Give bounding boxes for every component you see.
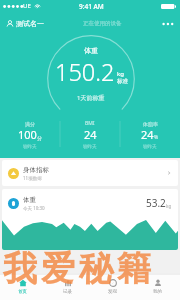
button[interactable]: 发现 (90, 274, 135, 300)
staticText: 今天 10:30 (23, 205, 45, 211)
staticText: kg (166, 203, 172, 209)
staticText: 发现 (108, 289, 117, 295)
button[interactable]: 身体指标 (2, 160, 178, 186)
staticText: 正在使用的设备 (83, 20, 122, 27)
staticText: 24 (84, 127, 97, 142)
staticText: 我的 (153, 289, 162, 295)
button[interactable]: 体重 (2, 189, 178, 217)
staticText: 较昨天 (143, 144, 157, 150)
staticText: BMI (85, 120, 95, 127)
staticText: 11项数据 (23, 175, 42, 181)
staticText: UE (23, 2, 31, 10)
staticText: % (154, 134, 159, 141)
staticText: 100 (18, 127, 37, 142)
staticText: 较昨天 (23, 144, 37, 150)
staticText: 150.2 (55, 56, 115, 88)
staticText: 标准 (117, 78, 128, 85)
staticText: 满分 (25, 121, 35, 127)
button[interactable]: More options (160, 17, 176, 30)
staticText: 体重 (23, 196, 36, 204)
staticText: 我爱秘籍 (1, 247, 153, 290)
staticText: kg (117, 70, 124, 78)
staticText: 9:41 AM (79, 2, 104, 11)
button[interactable]: 测试名一 (4, 17, 46, 30)
staticText: 24 (141, 127, 154, 142)
staticText: 身体指标 (23, 166, 49, 174)
button[interactable]: 首页 (0, 274, 45, 300)
staticText: 测试名一 (16, 19, 44, 28)
staticText: 1天前称重 (77, 94, 105, 102)
button[interactable]: 记录 (45, 274, 90, 300)
staticText: 较昨天 (83, 144, 97, 150)
staticText: 体重 (84, 46, 98, 55)
staticText: 体脂率 (143, 121, 158, 127)
staticText: 记录 (63, 289, 72, 295)
button[interactable]: 我的 (135, 274, 180, 300)
staticText: 分 (37, 135, 42, 141)
staticText: 首页 (18, 289, 27, 295)
staticText: 53.2 (146, 196, 166, 210)
